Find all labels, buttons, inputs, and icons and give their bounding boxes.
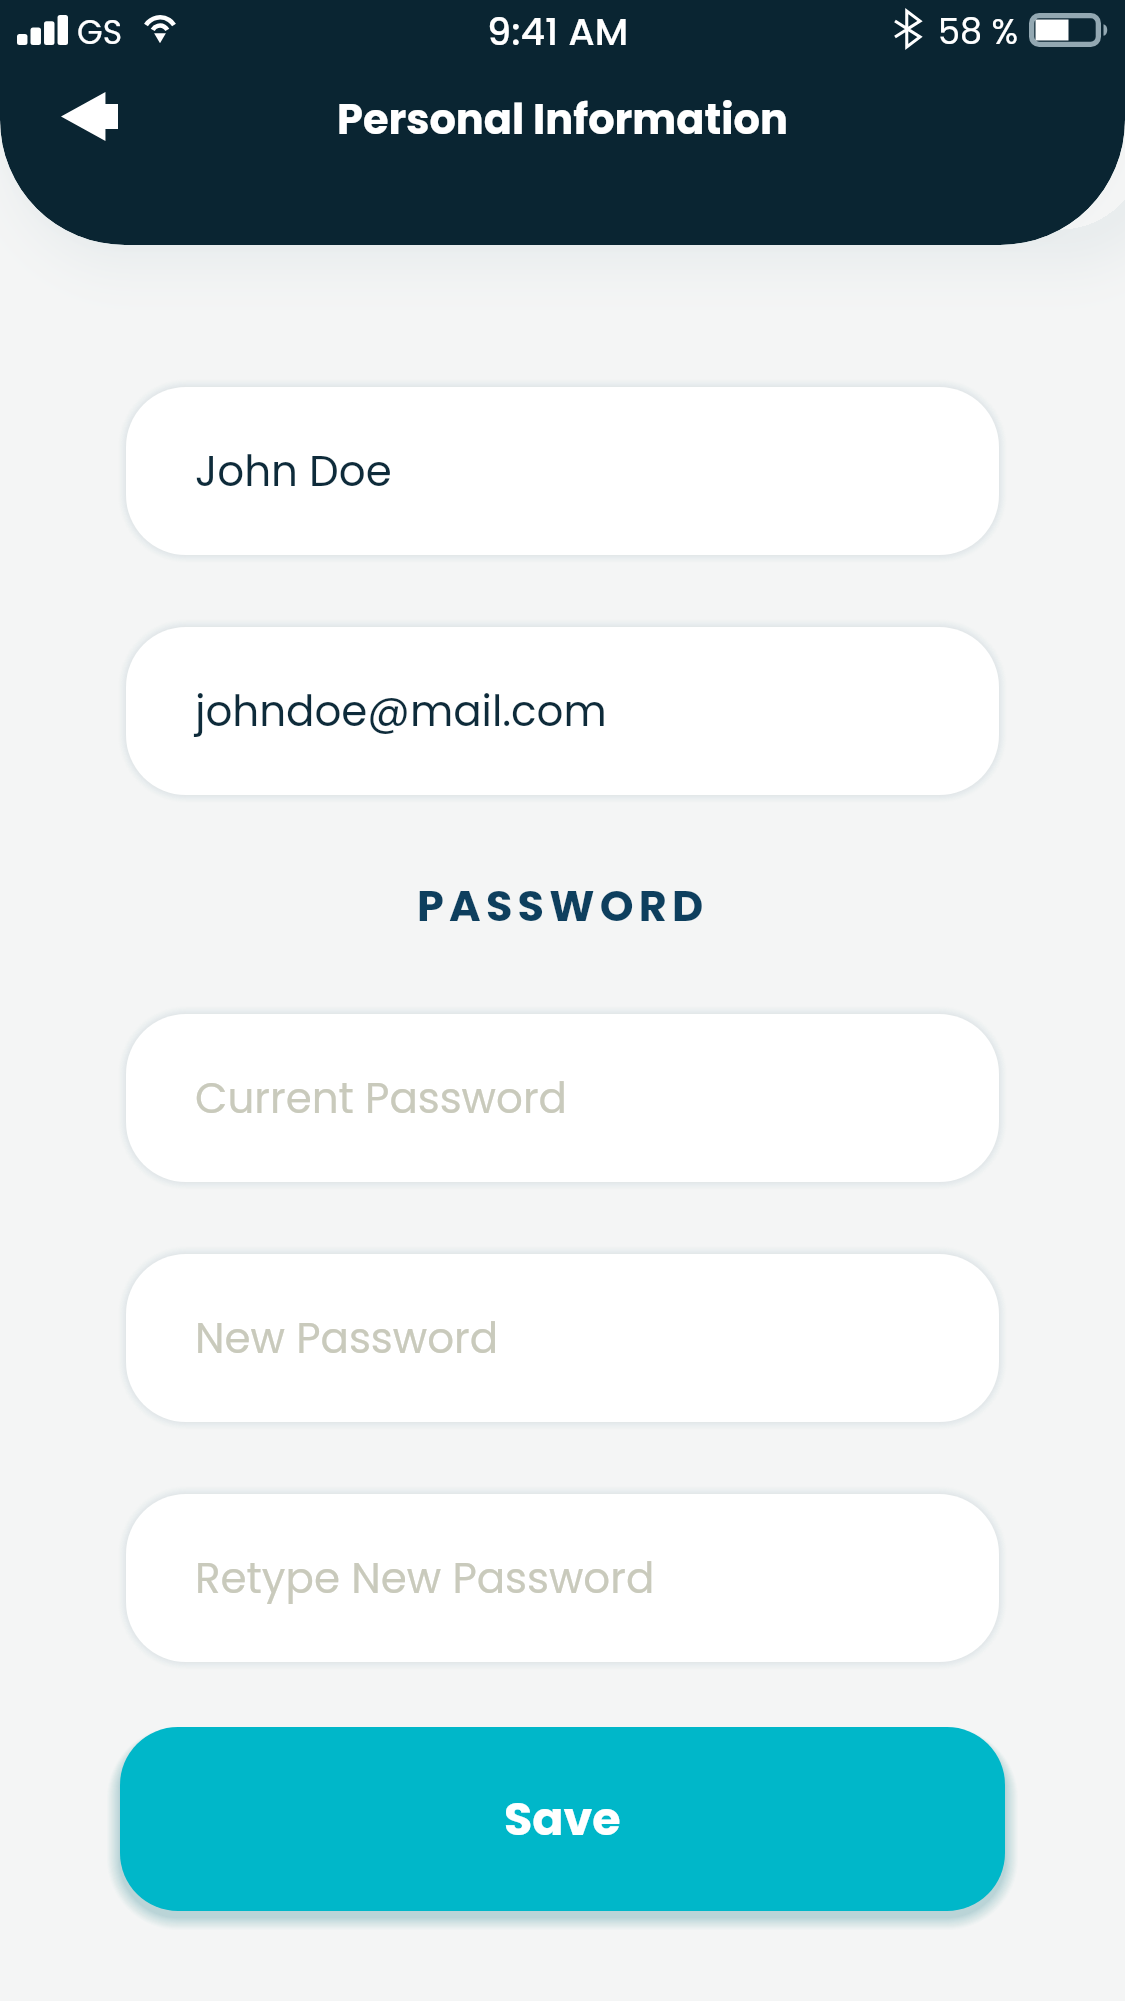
button[interactable]: Back [45,72,133,160]
staticText: Current Password [195,1069,567,1128]
button[interactable]: johndoe@mail.com [118,619,1007,803]
staticText: Save [504,1787,621,1851]
button[interactable]: John Doe [118,379,1007,563]
button[interactable]: New Password [118,1246,1007,1430]
staticText: Retype New Password [195,1549,655,1608]
button[interactable]: Save [108,1712,1017,1926]
staticText: 9:41 AM [487,5,629,58]
staticText: New Password [195,1309,499,1368]
staticText: johndoe@mail.com [195,682,607,741]
button[interactable]: Current Password [118,1006,1007,1190]
staticText: GS [77,9,123,55]
staticText: PASSWORD [417,876,709,936]
button[interactable]: Retype New Password [118,1486,1007,1670]
staticText: Personal Information [337,90,788,148]
staticText: John Doe [195,442,392,501]
staticText: 58 % [938,7,1018,56]
